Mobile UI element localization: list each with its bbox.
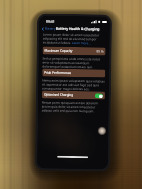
staticText: Sed ut perspiciatis unde omnis iste natu… — [42, 57, 105, 73]
staticText: Neque porro quisquam est qui dolorem ips… — [42, 101, 105, 113]
button[interactable]: Optimised Charging — [42, 91, 105, 99]
staticText: Battery Health & Charging — [56, 26, 100, 31]
staticText: Optimised Charging — [44, 93, 74, 97]
staticText: 85 % — [96, 49, 104, 53]
button[interactable]: Battery — [39, 25, 58, 32]
staticText: Lorem ipsum dolor sit amet consectetur a… — [43, 33, 106, 45]
staticText: Battery — [45, 27, 56, 31]
button[interactable]: Maximum Capacity — [42, 47, 106, 55]
staticText: 09:41 — [46, 19, 55, 24]
staticText: Maximum Capacity — [45, 49, 73, 53]
staticText: Peak Performance — [44, 71, 71, 75]
button[interactable]: Peak Performance — [42, 69, 105, 77]
staticText: Nemo enim ipsam voluptatem quia voluptas… — [42, 79, 105, 91]
